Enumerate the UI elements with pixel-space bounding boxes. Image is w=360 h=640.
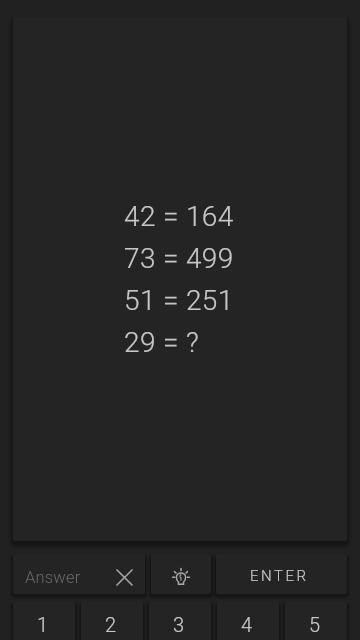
button[interactable]: 4 [217, 601, 279, 640]
staticText: 2 [105, 613, 117, 636]
staticText: 5 [309, 613, 321, 636]
button[interactable]: 2 [81, 601, 143, 640]
staticText: 3 [173, 613, 185, 636]
button[interactable]: Hint [151, 554, 211, 594]
button[interactable]: 1 [13, 601, 75, 640]
button[interactable]: Answer [13, 554, 145, 594]
staticText: 4 [241, 613, 253, 636]
button[interactable]: 5 [285, 601, 347, 640]
staticText: ENTER [250, 567, 309, 585]
staticText: Answer [25, 568, 104, 587]
button[interactable]: 3 [149, 601, 211, 640]
button[interactable]: ENTER [216, 554, 347, 594]
button[interactable]: Clear answer [104, 554, 145, 594]
staticText: 1 [37, 613, 49, 636]
staticText: 42 = 164 73 = 499 51 = 251 29 = ? [124, 200, 234, 359]
